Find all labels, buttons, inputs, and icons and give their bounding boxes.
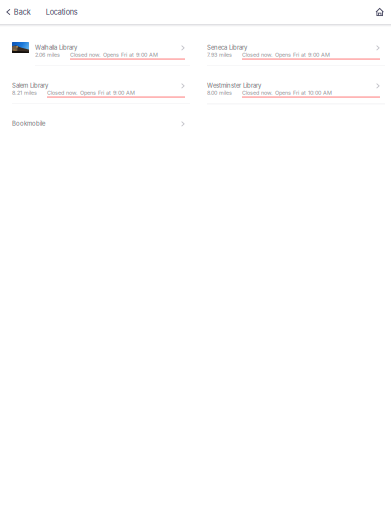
staticText: Seneca Library	[207, 44, 247, 51]
staticText: Back	[14, 8, 31, 16]
staticText: Westminster Library	[207, 82, 261, 89]
button[interactable]: Walhalla Library	[12, 28, 190, 66]
button[interactable]: Seneca Library	[207, 28, 385, 66]
button[interactable]: Salem Library	[12, 66, 190, 104]
staticText: Bookmobile	[12, 120, 45, 127]
staticText: Locations	[46, 8, 78, 16]
button[interactable]: Home	[375, 0, 391, 24]
staticText: 8.21 miles	[12, 89, 37, 96]
staticText: Closed now. Opens Fri at 10:00 AM	[242, 89, 332, 96]
button[interactable]: Bookmobile	[12, 104, 190, 142]
staticText: 7.93 miles	[207, 51, 232, 58]
staticText: Closed now. Opens Fri at 9:00 AM	[242, 51, 330, 58]
button[interactable]: Westminster Library	[207, 66, 385, 104]
staticText: Closed now. Opens Fri at 9:00 AM	[47, 89, 135, 96]
staticText: 8.00 miles	[207, 89, 232, 96]
staticText: Closed now. Opens Fri at 9:00 AM	[70, 51, 158, 58]
staticText: Salem Library	[12, 82, 48, 89]
button[interactable]: Back	[0, 0, 35, 24]
staticText: 2.06 miles	[35, 51, 60, 58]
staticText: Walhalla Library	[35, 44, 77, 51]
